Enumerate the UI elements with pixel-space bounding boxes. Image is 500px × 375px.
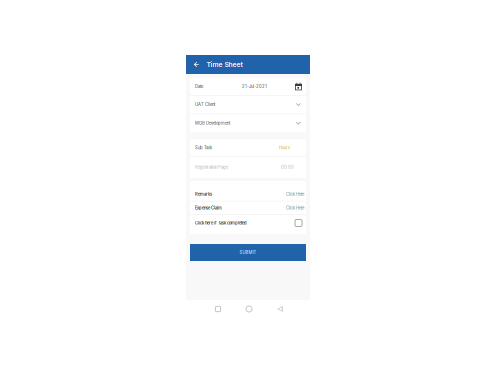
staticText: Registration Page (195, 165, 228, 170)
staticText: Hours (279, 145, 290, 150)
button[interactable]: Recent apps (211, 300, 225, 318)
staticText: SUBMIT (239, 250, 256, 255)
staticText: Click here if Task completed (195, 220, 247, 225)
button[interactable]: UAT Client (190, 96, 306, 114)
button[interactable]: Remarks (190, 188, 306, 201)
button[interactable]: Choose date (295, 83, 302, 90)
staticText: 00:00 (281, 165, 294, 170)
staticText: Click Here (286, 205, 304, 210)
staticText: 21-Jul-2021 (242, 84, 267, 89)
staticText: Sub Task (195, 145, 212, 150)
staticText: Click Here (286, 192, 304, 197)
button[interactable]: Expense Claim (190, 201, 306, 214)
button[interactable]: Back (273, 300, 287, 318)
button[interactable]: SUBMIT (190, 244, 306, 261)
button[interactable]: Home (242, 300, 256, 318)
button[interactable]: Back (186, 55, 206, 74)
staticText: Time Sheet (206, 60, 242, 69)
staticText: UAT Client (195, 102, 215, 107)
staticText: MGB Development (195, 121, 230, 126)
button[interactable]: MGB Development (190, 114, 306, 132)
button[interactable]: Click here if Task completed (190, 215, 306, 231)
staticText: Date (195, 84, 203, 89)
staticText: Expense Claim (195, 205, 222, 210)
staticText: Remarks (195, 192, 212, 197)
